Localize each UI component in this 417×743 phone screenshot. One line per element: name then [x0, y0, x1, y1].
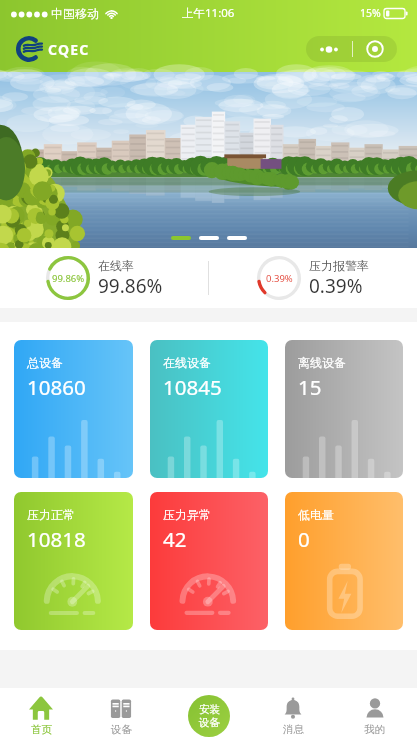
- staticText: 设备: [111, 723, 132, 736]
- button[interactable]: 0.39%: [209, 248, 417, 308]
- staticText: 0.39%: [266, 272, 293, 285]
- button[interactable]: 设备: [82, 688, 160, 743]
- staticText: 中国移动: [51, 6, 99, 21]
- button[interactable]: 压力正常: [14, 492, 133, 630]
- button[interactable]: 离线设备: [285, 340, 403, 478]
- button[interactable]: More options: [306, 36, 352, 62]
- staticText: 15: [298, 373, 322, 401]
- staticText: 在线设备: [163, 355, 211, 370]
- button[interactable]: [0, 72, 417, 248]
- staticText: 压力报警率: [309, 258, 369, 273]
- button[interactable]: Scan QR code: [353, 36, 397, 62]
- button[interactable]: 低电量: [285, 492, 403, 630]
- staticText: 0.39%: [309, 273, 363, 299]
- staticText: 我的: [364, 723, 385, 736]
- staticText: 总设备: [27, 355, 63, 370]
- staticText: 42: [163, 525, 187, 553]
- staticText: 99.86%: [52, 272, 85, 285]
- button[interactable]: 消息: [254, 688, 332, 743]
- button[interactable]: 在线设备: [150, 340, 268, 478]
- button[interactable]: 我的: [332, 688, 417, 743]
- staticText: 离线设备: [298, 355, 346, 370]
- staticText: 低电量: [298, 507, 334, 522]
- staticText: 在线率: [98, 258, 134, 273]
- staticText: 0: [298, 525, 310, 553]
- staticText: 压力正常: [27, 507, 75, 522]
- staticText: 15%: [360, 6, 381, 20]
- staticText: 消息: [283, 723, 304, 736]
- button[interactable]: 总设备: [14, 340, 133, 478]
- staticText: 10818: [27, 525, 86, 553]
- button[interactable]: 安装 设备: [188, 695, 230, 737]
- staticText: 安装 设备: [199, 703, 220, 729]
- staticText: 首页: [31, 723, 52, 736]
- button[interactable]: 首页: [0, 688, 82, 743]
- staticText: 压力异常: [163, 507, 211, 522]
- staticText: 99.86%: [98, 273, 163, 299]
- staticText: 10860: [27, 373, 86, 401]
- button[interactable]: 压力异常: [150, 492, 268, 630]
- staticText: CQEC: [48, 40, 90, 59]
- staticText: 10845: [163, 373, 222, 401]
- button[interactable]: 99.86%: [0, 248, 208, 308]
- staticText: 上午11:06: [182, 5, 235, 21]
